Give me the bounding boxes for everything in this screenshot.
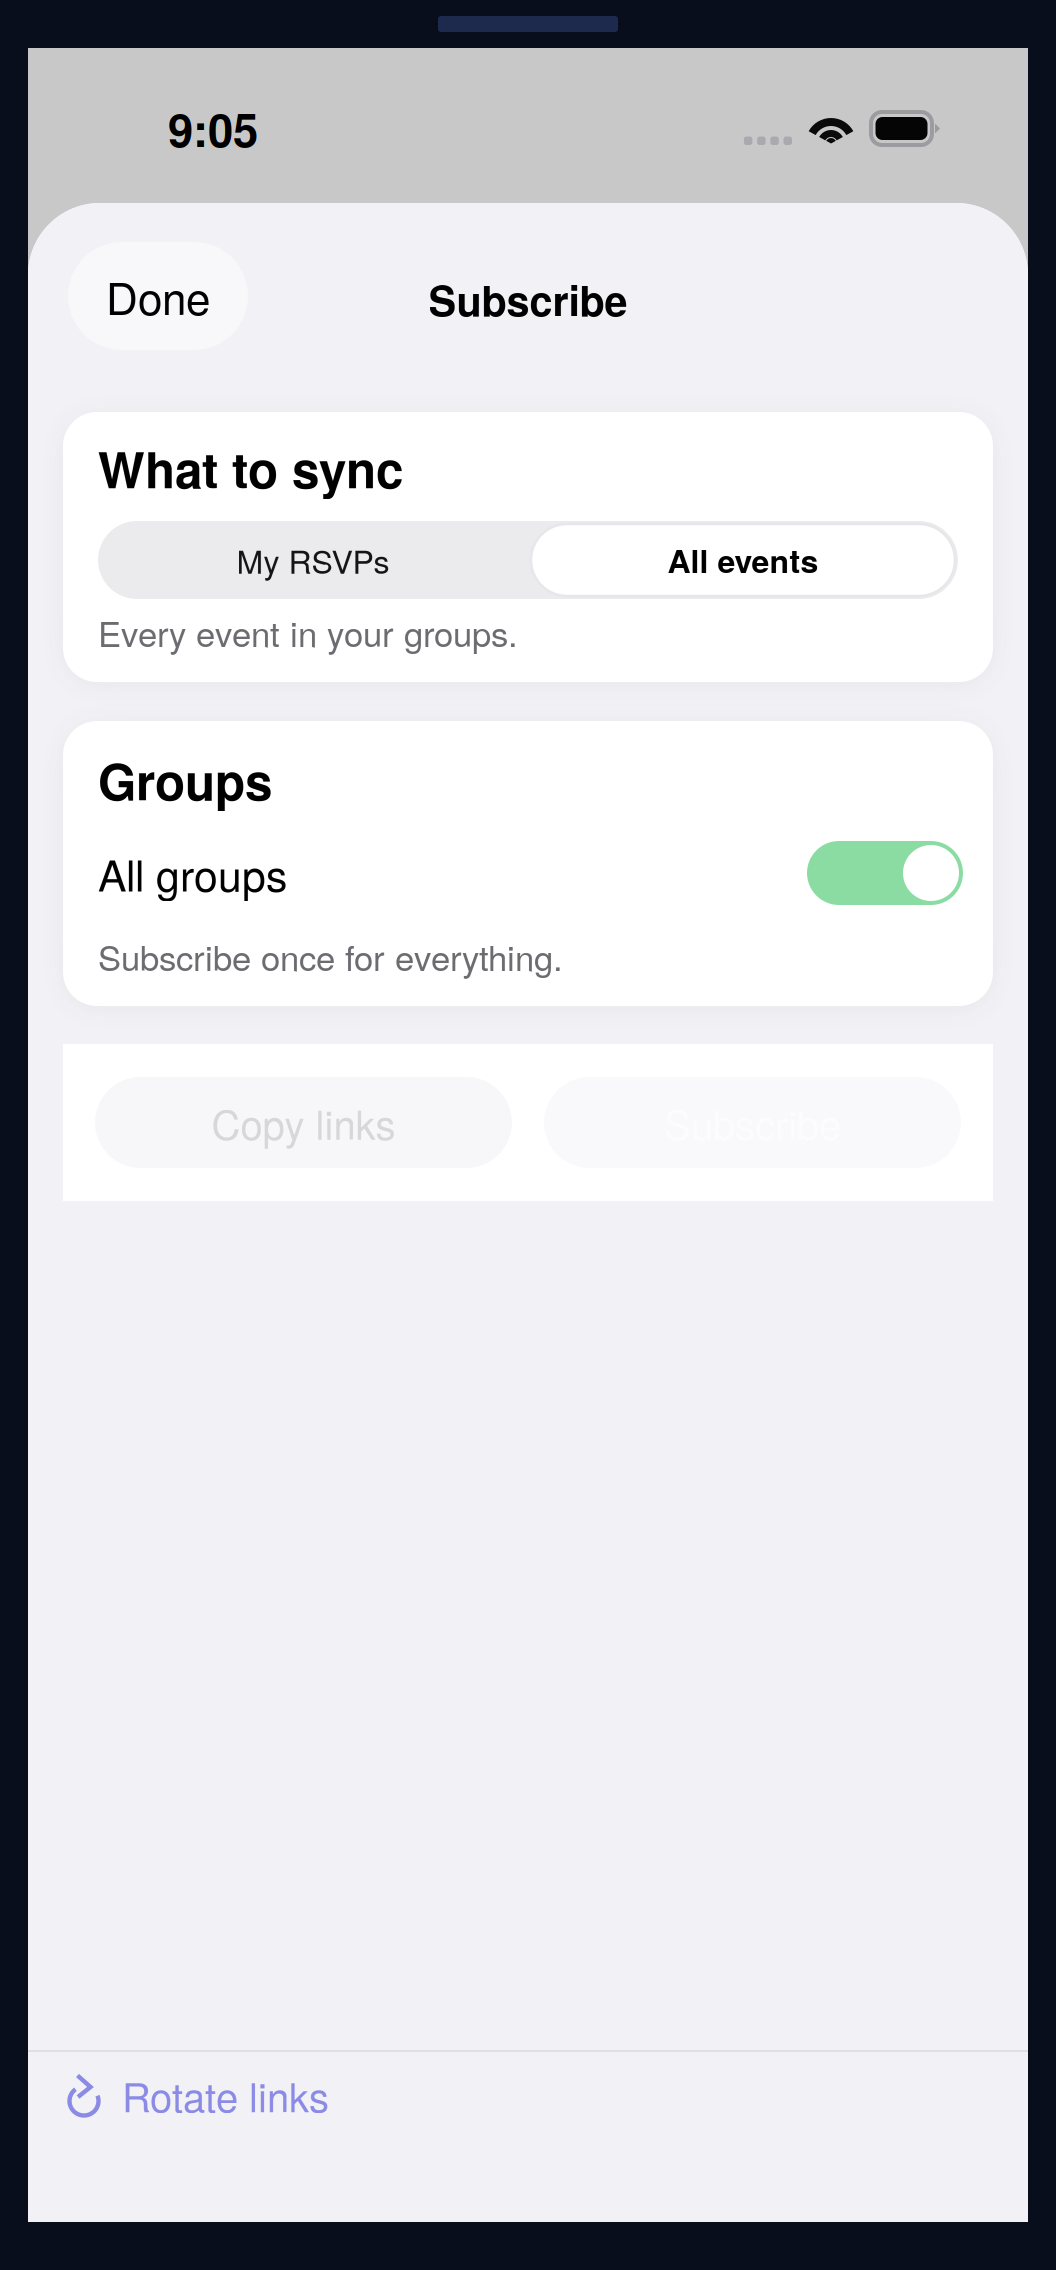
button[interactable]: All groups	[807, 841, 963, 905]
button[interactable]: Rotate links	[68, 2074, 329, 2116]
staticText: Done	[106, 264, 210, 327]
button[interactable]: Done	[68, 242, 248, 350]
staticText: Subscribe	[428, 269, 627, 329]
staticText: Copy links	[211, 1094, 395, 1151]
staticText: Groups	[98, 745, 272, 815]
staticText: My RSVPs	[236, 537, 389, 583]
button[interactable]: All events	[528, 521, 958, 599]
staticText: 9:05	[168, 96, 258, 161]
staticText: Rotate links	[122, 2066, 329, 2124]
staticText: Every event in your groups.	[98, 607, 518, 657]
button[interactable]: My RSVPs	[98, 521, 528, 599]
staticText: All groups	[98, 842, 287, 904]
staticText: All events	[667, 537, 818, 583]
staticText: Subscribe once for everything.	[98, 931, 563, 981]
staticText: What to sync	[98, 433, 403, 503]
button[interactable]: Copy links	[95, 1077, 512, 1168]
